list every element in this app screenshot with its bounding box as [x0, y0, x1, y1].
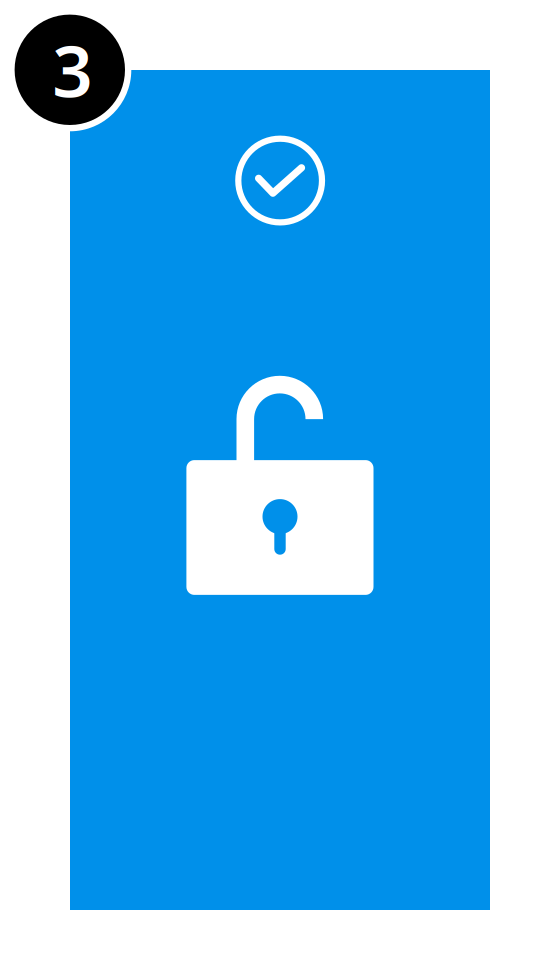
- button[interactable]: Unlocked — step complete: [70, 70, 490, 910]
- button[interactable]: Step 3: [15, 15, 125, 125]
- staticText: 3: [52, 23, 92, 117]
